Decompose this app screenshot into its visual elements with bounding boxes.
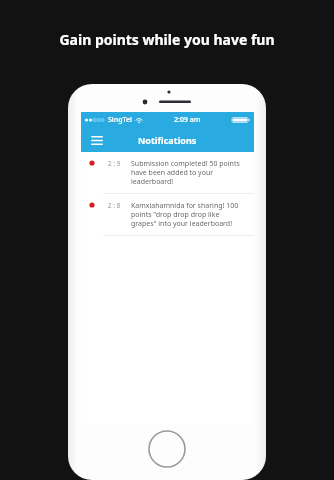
button[interactable]: Home bbox=[148, 430, 186, 468]
button[interactable]: Menu bbox=[87, 130, 107, 150]
staticText: SingTel bbox=[108, 115, 132, 125]
staticText: Notifications bbox=[138, 134, 197, 146]
button[interactable]: 2 : 9 bbox=[81, 152, 254, 194]
staticText: 2:09 am bbox=[174, 115, 201, 125]
staticText: Gain points while you have fun bbox=[59, 30, 275, 49]
staticText: Kamxiahamnida for sharing! 100 points "d… bbox=[131, 201, 246, 228]
staticText: 2 : 9 bbox=[101, 159, 127, 168]
staticText: 2 : 8 bbox=[101, 201, 127, 210]
button[interactable]: 2 : 8 bbox=[81, 194, 254, 236]
staticText: Submission completed! 50 points have bee… bbox=[131, 159, 246, 186]
